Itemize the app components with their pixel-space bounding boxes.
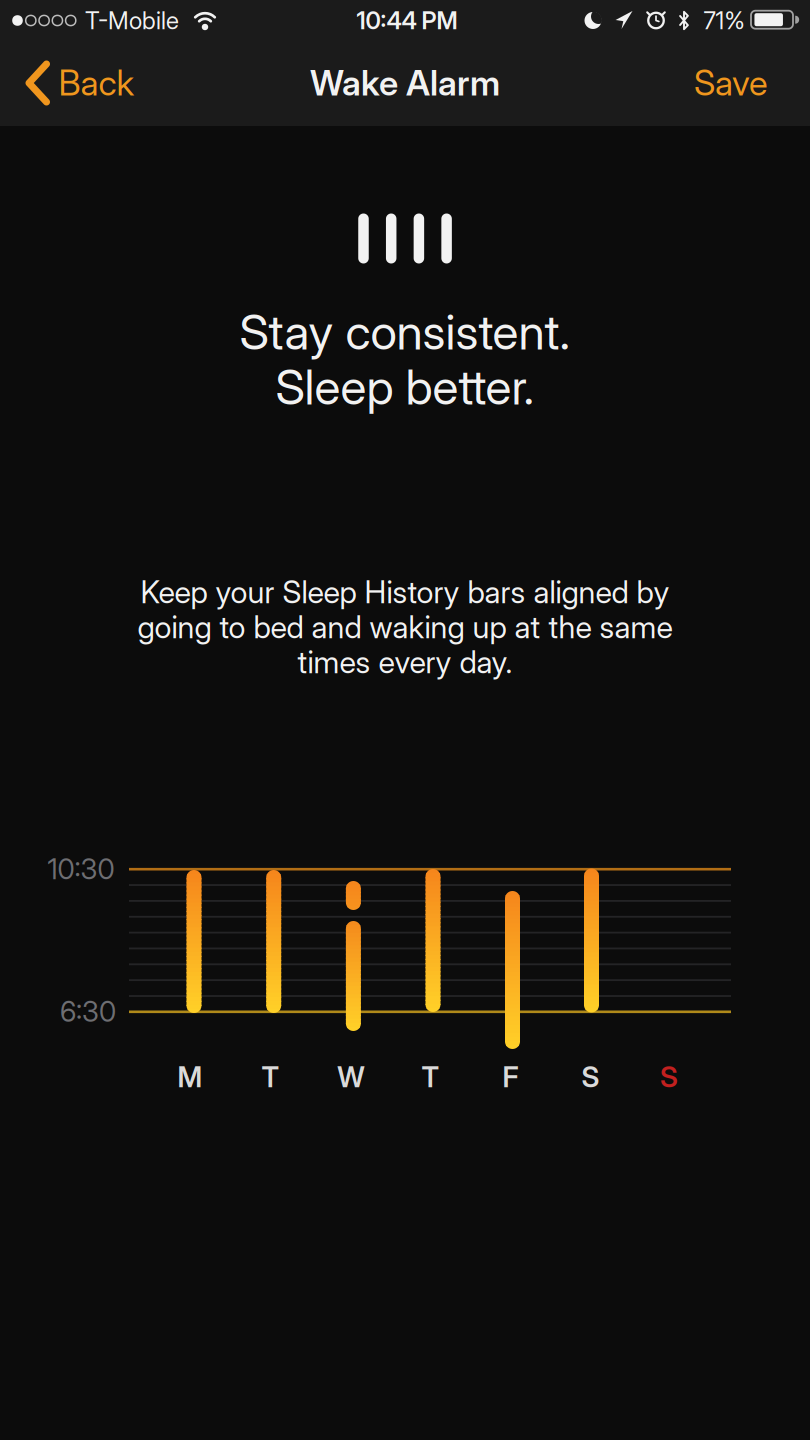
staticText: T — [261, 1060, 279, 1093]
staticText: Save — [694, 63, 768, 103]
staticText: times every day. — [297, 644, 512, 680]
staticText: S — [581, 1060, 599, 1093]
staticText: 10:30 — [47, 852, 114, 885]
button[interactable]: Back — [25, 62, 134, 104]
staticText: S — [660, 1060, 678, 1093]
staticText: T-Mobile — [85, 6, 179, 35]
staticText: Sleep better. — [275, 359, 534, 415]
staticText: F — [502, 1060, 518, 1093]
staticText: W — [337, 1060, 364, 1093]
staticText: 10:44 PM — [356, 6, 457, 35]
staticText: M — [177, 1060, 202, 1093]
staticText: Back — [58, 63, 134, 103]
staticText: going to bed and waking up at the same — [137, 609, 672, 645]
staticText: Stay consistent. — [239, 304, 570, 360]
staticText: T — [421, 1060, 439, 1093]
staticText: 6:30 — [60, 995, 116, 1028]
staticText: 71% — [703, 6, 744, 35]
button[interactable]: Save — [694, 63, 768, 103]
staticText: Wake Alarm — [310, 63, 500, 103]
staticText: Keep your Sleep History bars aligned by — [140, 574, 669, 610]
